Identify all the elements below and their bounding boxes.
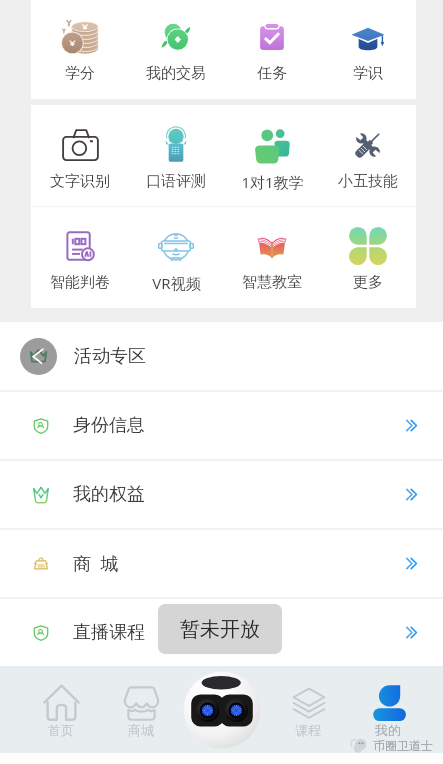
staticText: 学识	[353, 64, 383, 83]
staticText: 任务	[257, 64, 287, 83]
staticText: 课程	[295, 722, 321, 738]
staticText: 直播课程	[73, 621, 145, 644]
button[interactable]: 我的权益	[0, 461, 443, 528]
staticText: 商城	[128, 722, 154, 738]
button[interactable]: 学识	[320, 0, 416, 83]
staticText: 身份信息	[73, 414, 145, 437]
button[interactable]: 学分	[31, 0, 128, 83]
staticText: 活动专区	[74, 345, 146, 368]
button[interactable]: 智慧教室	[224, 207, 320, 292]
staticText: 智慧教室	[242, 273, 302, 292]
staticText: VR视频	[152, 273, 201, 293]
button[interactable]: 首页	[23, 684, 99, 738]
button[interactable]: 我的交易	[128, 0, 224, 83]
staticText: 币圈卫道士	[373, 738, 433, 753]
staticText: 暂未开放	[180, 617, 260, 642]
button[interactable]: VR视频	[128, 207, 224, 293]
button[interactable]: 智能助手	[182, 670, 262, 750]
staticText: 我的交易	[146, 64, 206, 83]
button[interactable]: 我的	[350, 684, 426, 738]
staticText: 小五技能	[338, 172, 398, 191]
button[interactable]: 更多	[320, 207, 416, 292]
button[interactable]: 1对1教学	[224, 105, 320, 192]
button[interactable]: 任务	[224, 0, 320, 83]
button[interactable]: 小五技能	[320, 105, 416, 191]
button[interactable]: 文字识别	[31, 105, 128, 191]
staticText: 我的权益	[73, 483, 145, 506]
button[interactable]: 活动专区	[0, 322, 443, 390]
button[interactable]: 课程	[270, 684, 346, 738]
staticText: 文字识别	[50, 172, 110, 191]
button[interactable]: 智能判卷	[31, 207, 128, 292]
staticText: 1对1教学	[241, 172, 304, 192]
staticText: 更多	[353, 273, 383, 292]
staticText: 我的	[375, 722, 401, 738]
button[interactable]: 口语评测	[128, 105, 224, 191]
button[interactable]: 商 城	[0, 530, 443, 597]
staticText: 学分	[65, 64, 95, 83]
staticText: 口语评测	[146, 172, 206, 191]
button[interactable]: 身份信息	[0, 392, 443, 459]
staticText: 商 城	[73, 551, 119, 576]
button[interactable]: 商城	[103, 684, 179, 738]
staticText: 首页	[48, 722, 74, 738]
button[interactable]: 直播课程	[0, 599, 443, 666]
staticText: 智能判卷	[50, 273, 110, 292]
